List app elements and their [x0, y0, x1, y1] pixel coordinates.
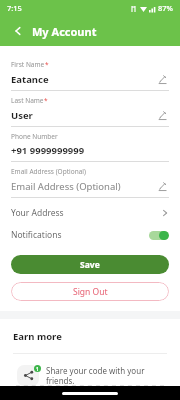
staticText: Email Address (Optional) — [11, 180, 121, 193]
button[interactable]: Edit Email Address (Optional) — [155, 179, 169, 193]
button[interactable]: Edit First Name — [155, 72, 169, 86]
button[interactable]: Save — [11, 255, 169, 274]
staticText: Notifications — [11, 229, 62, 241]
staticText: 1 — [36, 366, 39, 372]
staticText: My Account — [32, 24, 97, 39]
button[interactable]: Sign Out — [11, 282, 169, 301]
button[interactable]: Your Address — [11, 202, 169, 224]
staticText: 87% — [158, 3, 173, 13]
staticText: First Name — [11, 60, 45, 69]
staticText: +91 9999999999 — [11, 144, 85, 157]
button[interactable]: Back — [9, 22, 27, 40]
staticText: Phone Number — [11, 132, 58, 141]
staticText: 7:15 — [7, 3, 22, 13]
staticText: Your Address — [11, 207, 64, 219]
staticText: Eatance — [11, 73, 49, 86]
staticText: User — [11, 109, 33, 122]
staticText: Last Name — [11, 96, 44, 105]
staticText: Share your code with your friends. — [46, 365, 145, 386]
staticText: * — [44, 96, 48, 105]
staticText: Save — [80, 259, 100, 271]
staticText: Sign Out — [73, 286, 108, 298]
staticText: Earn more — [13, 330, 62, 343]
staticText: * — [45, 60, 49, 69]
staticText: Email Address (Optional) — [11, 167, 86, 176]
button[interactable]: Edit Last Name — [155, 108, 169, 122]
button[interactable]: Notifications — [11, 224, 169, 246]
